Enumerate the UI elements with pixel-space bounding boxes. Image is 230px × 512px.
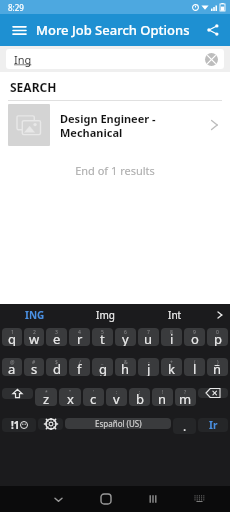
button[interactable]: 2	[24, 328, 44, 346]
staticText: j	[147, 360, 151, 376]
staticText: (	[194, 359, 196, 366]
staticText: 0	[216, 329, 219, 336]
staticText: &	[124, 359, 128, 366]
staticText: "	[69, 389, 72, 396]
staticText: ñ	[213, 360, 222, 376]
staticText: 6	[124, 329, 127, 336]
button[interactable]: Share	[202, 19, 224, 41]
staticText: r	[77, 330, 83, 346]
button[interactable]: Shift	[2, 388, 33, 399]
button[interactable]: 6	[115, 328, 136, 346]
button[interactable]: ;	[129, 388, 150, 406]
button[interactable]: $	[46, 358, 67, 376]
staticText: SEARCH	[10, 79, 57, 95]
staticText: Img	[96, 308, 115, 322]
button[interactable]: ?	[175, 388, 196, 406]
staticText: 3	[55, 329, 58, 336]
button[interactable]: Español (US)	[65, 418, 171, 429]
button[interactable]: *	[35, 388, 57, 406]
button[interactable]: :	[106, 388, 127, 406]
staticText: h	[121, 360, 130, 376]
staticText: f	[77, 360, 82, 376]
button[interactable]: Ing	[6, 49, 224, 69]
button[interactable]: 7	[138, 328, 159, 346]
staticText: w	[29, 330, 40, 346]
staticText: b	[136, 390, 144, 406]
staticText: n	[158, 390, 167, 406]
staticText: )	[217, 359, 219, 366]
button[interactable]: +	[161, 358, 182, 376]
button[interactable]: 4	[69, 328, 90, 346]
staticText: 5	[101, 329, 104, 336]
button[interactable]: Home	[82, 494, 129, 504]
staticText: l	[193, 360, 197, 376]
button[interactable]: /	[69, 358, 90, 376]
staticText: -	[148, 359, 150, 366]
staticText: 9	[193, 329, 196, 336]
button[interactable]: @	[2, 358, 22, 376]
staticText: @	[10, 359, 15, 366]
button[interactable]: Backspace	[198, 388, 228, 398]
button[interactable]: ING	[0, 308, 70, 322]
button[interactable]: 3	[46, 328, 67, 346]
staticText: Design Engineer - Mechanical	[60, 111, 206, 140]
button[interactable]: &	[115, 358, 136, 376]
button[interactable]: More suggestions	[210, 310, 230, 320]
button[interactable]: -	[138, 358, 159, 376]
staticText: o	[191, 330, 199, 346]
button[interactable]: 9	[184, 328, 205, 346]
staticText: i	[170, 330, 174, 346]
button[interactable]: Design Engineer - Mechanical	[0, 101, 230, 149]
button[interactable]: Int	[140, 308, 210, 322]
button[interactable]: 5	[92, 328, 113, 346]
staticText: '	[93, 389, 95, 396]
staticText: 1	[11, 329, 14, 336]
staticText: ;	[139, 389, 141, 396]
button[interactable]: _	[92, 358, 113, 376]
staticText: ING	[25, 308, 45, 322]
button[interactable]: Ir	[198, 418, 228, 432]
staticText: _	[101, 359, 104, 366]
button[interactable]: .	[173, 418, 196, 434]
staticText: Español (US)	[95, 418, 142, 429]
button[interactable]: )	[207, 358, 228, 376]
staticText: 8:29	[8, 2, 24, 13]
staticText: Int	[168, 308, 182, 322]
staticText: q	[8, 330, 16, 346]
button[interactable]: 0	[207, 328, 228, 346]
staticText: *	[45, 389, 48, 396]
button[interactable]: !	[152, 388, 173, 406]
staticText: c	[90, 390, 97, 406]
staticText: ?	[184, 389, 187, 396]
staticText: d	[53, 360, 61, 376]
staticText: e	[53, 330, 61, 346]
button[interactable]: Recent apps	[129, 494, 176, 504]
button[interactable]: Open navigation menu	[8, 19, 30, 41]
staticText: !	[162, 389, 164, 396]
button[interactable]: Back	[34, 494, 82, 505]
staticText: p	[214, 330, 222, 346]
button[interactable]: '	[83, 388, 104, 406]
staticText: Ir	[209, 418, 218, 432]
staticText: End of 1 results	[0, 163, 230, 178]
staticText: a	[8, 360, 16, 376]
button[interactable]: 1	[2, 328, 22, 346]
button[interactable]: #	[24, 358, 44, 376]
staticText: Ing	[14, 52, 32, 67]
staticText: s	[31, 360, 38, 376]
button[interactable]: Switch keyboard	[176, 495, 223, 503]
button[interactable]: Clear search	[205, 53, 218, 66]
button[interactable]: "	[59, 388, 81, 406]
staticText: !1	[11, 418, 20, 432]
staticText: 8	[170, 329, 173, 336]
button[interactable]: !1	[2, 418, 36, 432]
button[interactable]: (	[184, 358, 205, 376]
staticText: k	[168, 360, 175, 376]
staticText: .	[183, 418, 187, 434]
button[interactable]: Keyboard settings	[38, 418, 63, 430]
button[interactable]: 8	[161, 328, 182, 346]
staticText: z	[43, 390, 50, 406]
staticText: x	[67, 390, 74, 406]
button[interactable]: Img	[70, 308, 140, 322]
staticText: 7	[147, 329, 150, 336]
